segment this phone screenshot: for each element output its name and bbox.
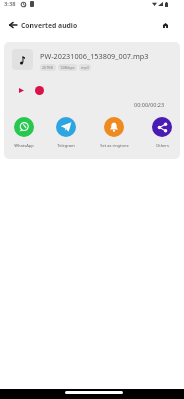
button[interactable]: Play [15, 84, 27, 96]
button[interactable]: Record [33, 84, 45, 96]
button[interactable]: Back [8, 20, 18, 30]
staticText: 3:38 [4, 0, 16, 8]
button[interactable]: Home [160, 20, 170, 30]
staticText: 128kbps [60, 65, 75, 70]
staticText: Converted audio [21, 21, 78, 30]
button[interactable]: WhatsApp [4, 117, 44, 148]
staticText: Telegram [57, 143, 75, 148]
staticText: 00:00/00:23 [134, 101, 165, 108]
staticText: Set as ringtone [100, 143, 129, 148]
button[interactable]: Others [142, 117, 180, 148]
button[interactable]: Telegram [46, 117, 86, 148]
staticText: mp3 [81, 65, 89, 70]
staticText: PW-20231006_153809_007.mp3 [40, 51, 149, 61]
staticText: Others [156, 143, 169, 148]
staticText: WhatsApp [14, 143, 34, 148]
button[interactable]: Set as ringtone [94, 117, 134, 148]
staticText: 267KB [42, 65, 54, 70]
